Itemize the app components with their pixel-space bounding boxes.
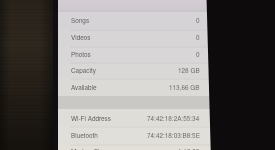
staticText: 113,66 GB [169,83,200,92]
staticText: 0 [196,16,200,25]
button[interactable]: Wi-Fi Address [58,109,211,127]
button[interactable]: Available [58,78,211,96]
button[interactable]: Capacity [58,62,211,78]
staticText: 1.12.00 [178,147,200,150]
button[interactable]: Songs [58,12,211,29]
staticText: 74:42:18:2A:55:34 [147,114,200,123]
staticText: Videos [71,33,91,42]
staticText: 0 [196,33,200,42]
staticText: 0 [196,50,200,59]
staticText: Wi-Fi Address [71,114,111,123]
button[interactable]: Bluetooth [58,126,211,144]
button[interactable]: Videos [58,29,211,46]
staticText: Available [71,83,97,92]
staticText: Capacity [71,66,96,75]
staticText: Modem Firmware [71,147,121,150]
staticText: Bluetooth [71,131,98,140]
staticText: 128 GB [178,66,200,75]
staticText: 74:42:18:03:B8:5E [147,131,200,140]
button[interactable]: Modem Firmware [58,144,211,150]
staticText: Photos [71,50,91,59]
staticText: Songs [71,16,90,25]
button[interactable]: Photos [58,46,211,63]
